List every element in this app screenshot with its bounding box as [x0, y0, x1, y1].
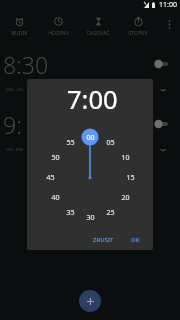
- staticText: 40: [51, 192, 60, 202]
- staticText: 35: [66, 207, 75, 217]
- staticText: 00: [86, 132, 95, 142]
- staticText: 15: [126, 172, 135, 182]
- button[interactable]: OK: [127, 232, 144, 248]
- staticText: 45: [46, 172, 55, 182]
- button[interactable]: HODINY: [39, 13, 78, 40]
- staticText: 7:00: [67, 82, 118, 117]
- staticText: 50: [51, 152, 60, 162]
- staticText: ČASOVAČ: [86, 29, 110, 36]
- button[interactable]: Toggle alarm: [150, 117, 172, 131]
- staticText: BUDÍK: [11, 29, 28, 36]
- button[interactable]: Add alarm: [79, 290, 101, 312]
- button[interactable]: STOPKY: [118, 13, 158, 40]
- staticText: 9:: [3, 109, 22, 140]
- staticText: so, ne: [6, 145, 23, 153]
- staticText: 8:30: [3, 49, 49, 80]
- staticText: ZRUŠIT: [93, 236, 114, 244]
- staticText: 11:00: [159, 0, 177, 10]
- button[interactable]: 8:30: [0, 45, 180, 105]
- staticText: 55: [66, 137, 75, 147]
- button[interactable]: 9:: [0, 105, 180, 165]
- button[interactable]: ČASOVAČ: [78, 13, 118, 40]
- button[interactable]: Toggle alarm: [150, 57, 172, 71]
- staticText: HODINY: [48, 29, 69, 36]
- staticText: OK: [131, 236, 140, 244]
- staticText: 20: [121, 192, 130, 202]
- button[interactable]: ZRUŠIT: [89, 232, 118, 248]
- button[interactable]: BUDÍK: [0, 13, 39, 40]
- staticText: 10: [121, 152, 130, 162]
- button[interactable]: More options: [158, 13, 180, 40]
- button[interactable]: Expand alarm: [158, 85, 168, 95]
- staticText: po, út,: [6, 85, 24, 93]
- staticText: 30: [86, 212, 95, 222]
- staticText: 05: [106, 137, 115, 147]
- staticText: 25: [106, 207, 115, 217]
- staticText: STOPKY: [128, 29, 148, 36]
- button[interactable]: Expand alarm: [158, 145, 168, 155]
